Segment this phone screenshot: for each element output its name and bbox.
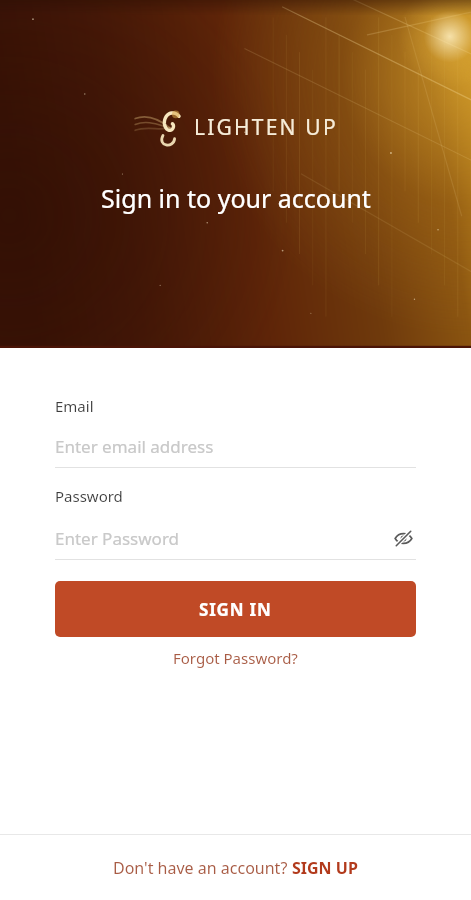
staticText: Don't have an account?: [113, 857, 292, 879]
button[interactable]: Enter email address: [55, 435, 416, 458]
staticText: LIGHTEN UP: [194, 113, 338, 142]
button[interactable]: Forgot Password?: [55, 648, 416, 668]
staticText: Forgot Password?: [173, 648, 298, 668]
staticText: Sign in to your account: [101, 181, 371, 215]
button[interactable]: Show password: [390, 525, 416, 551]
staticText: Email: [55, 396, 94, 416]
staticText: Enter email address: [55, 435, 214, 458]
staticText: Enter Password: [55, 527, 180, 550]
button[interactable]: SIGN IN: [55, 581, 416, 637]
button[interactable]: Enter Password: [55, 527, 390, 550]
staticText: Password: [55, 486, 123, 506]
staticText: SIGN IN: [199, 598, 272, 621]
staticText: SIGN UP: [292, 857, 358, 879]
button[interactable]: Don't have an account?: [0, 835, 471, 900]
